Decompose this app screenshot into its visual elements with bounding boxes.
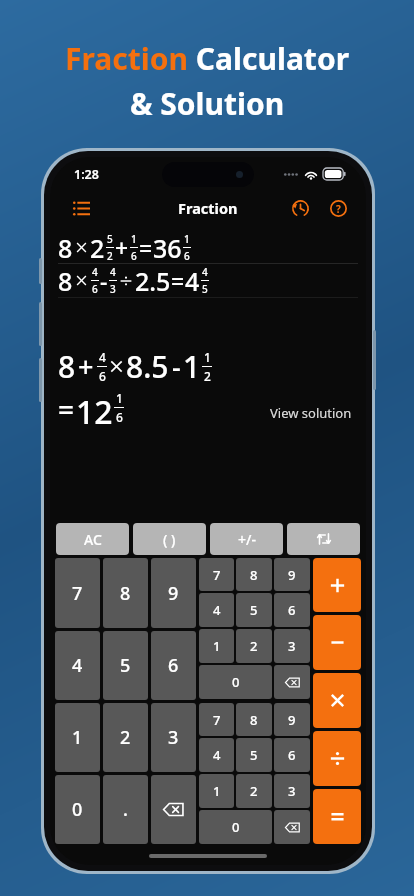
button[interactable]: 0 <box>199 665 272 699</box>
staticText: 12 <box>76 390 113 424</box>
staticText: 3 <box>110 282 116 296</box>
staticText: 6 <box>288 746 296 764</box>
button[interactable]: Divide <box>313 731 361 786</box>
button[interactable]: +/- <box>210 523 283 555</box>
staticText: 2 <box>250 637 258 655</box>
button[interactable]: 9 <box>151 558 196 628</box>
button[interactable]: 2 <box>236 629 272 663</box>
staticText: + <box>78 348 94 385</box>
button[interactable]: 2 <box>103 703 148 772</box>
button[interactable]: Delete <box>274 810 310 844</box>
button[interactable]: 5 <box>236 738 272 772</box>
button[interactable]: 8 <box>236 703 272 736</box>
button[interactable]: Plus <box>313 558 361 612</box>
staticText: 4 <box>202 265 208 279</box>
staticText: & Solution <box>130 83 285 124</box>
staticText: 1 <box>116 390 123 406</box>
button[interactable]: 6 <box>274 738 310 772</box>
button[interactable]: Swap <box>287 523 360 555</box>
button[interactable]: 7 <box>199 703 234 736</box>
button[interactable]: 7 <box>199 558 234 591</box>
button[interactable]: 7 <box>55 558 100 628</box>
staticText: 2 <box>90 231 105 263</box>
button[interactable]: 6 <box>151 631 196 700</box>
staticText: 1 <box>131 232 137 246</box>
button[interactable]: Equals <box>313 789 361 844</box>
button[interactable]: ( ) <box>133 523 206 555</box>
staticText: 9 <box>288 711 296 729</box>
staticText: 4 <box>99 349 106 365</box>
staticText: 8 <box>250 566 258 584</box>
staticText: 1 <box>204 349 211 365</box>
staticText: 6 <box>168 653 179 678</box>
button[interactable]: 6 <box>274 593 310 627</box>
button[interactable]: 1 <box>199 629 234 663</box>
staticText: 6 <box>99 368 106 384</box>
staticText: ( ) <box>163 530 176 549</box>
staticText: ? <box>336 202 341 216</box>
button[interactable]: 0 <box>55 775 100 844</box>
staticText: 4 <box>185 264 200 297</box>
staticText: 5 <box>250 746 258 764</box>
button[interactable]: 0 <box>199 810 272 844</box>
staticText: 2 <box>120 725 131 750</box>
button[interactable]: 2 <box>236 774 272 808</box>
button[interactable]: 1 <box>199 774 234 808</box>
staticText: 8 <box>250 711 258 729</box>
button[interactable]: 4 <box>55 631 100 700</box>
staticText: + <box>115 232 129 263</box>
button[interactable]: AC <box>56 523 129 555</box>
staticText: 4 <box>213 746 221 764</box>
staticText: 0 <box>232 673 240 691</box>
button[interactable]: Delete <box>151 775 196 844</box>
staticText: 36 <box>153 231 182 263</box>
staticText: 2 <box>250 782 258 800</box>
staticText: = <box>58 390 75 424</box>
button[interactable]: 5 <box>236 593 272 627</box>
staticText: 5 <box>202 282 208 296</box>
staticText: 1 <box>213 637 221 655</box>
staticText: +/- <box>238 530 256 549</box>
staticText: 9 <box>168 581 179 606</box>
button[interactable]: Minus <box>313 615 361 670</box>
staticText: 8 <box>58 264 73 297</box>
button[interactable]: View solution <box>264 402 358 424</box>
button[interactable]: 9 <box>274 558 310 591</box>
staticText: = <box>171 265 185 296</box>
button[interactable]: 9 <box>274 703 310 736</box>
staticText: 3 <box>168 725 179 750</box>
staticText: 6 <box>116 409 123 424</box>
button[interactable]: 3 <box>151 703 196 772</box>
button[interactable]: 8 <box>236 558 272 591</box>
staticText: 5 <box>120 653 131 678</box>
staticText: 2.5 <box>135 264 171 297</box>
button[interactable]: 3 <box>274 629 310 663</box>
staticText: - <box>172 348 181 385</box>
staticText: View solution <box>270 404 352 422</box>
button[interactable]: 4 <box>199 593 234 627</box>
staticText: 6 <box>184 249 190 263</box>
button[interactable]: 3 <box>274 774 310 808</box>
button[interactable]: 8 <box>103 558 148 628</box>
staticText: 0 <box>232 818 240 836</box>
button[interactable]: 1 <box>55 703 100 772</box>
staticText: 3 <box>288 637 296 655</box>
staticText: 7 <box>72 581 83 606</box>
staticText: 0 <box>72 797 83 822</box>
button[interactable]: . <box>103 775 148 844</box>
staticText: = <box>139 232 153 263</box>
staticText: . <box>123 797 128 822</box>
button[interactable]: Multiply <box>313 673 361 728</box>
button[interactable]: Help <box>322 192 354 224</box>
staticText: 9 <box>288 566 296 584</box>
staticText: Fraction <box>178 198 238 218</box>
button[interactable]: Delete <box>274 665 310 699</box>
button[interactable]: History <box>284 192 316 224</box>
staticText: 6 <box>131 249 137 263</box>
staticText: 8 <box>58 346 76 386</box>
staticText: 5 <box>250 601 258 619</box>
button[interactable]: 4 <box>199 738 234 772</box>
button[interactable]: 5 <box>103 631 148 700</box>
staticText: 6 <box>288 601 296 619</box>
button[interactable]: Menu <box>64 191 98 225</box>
